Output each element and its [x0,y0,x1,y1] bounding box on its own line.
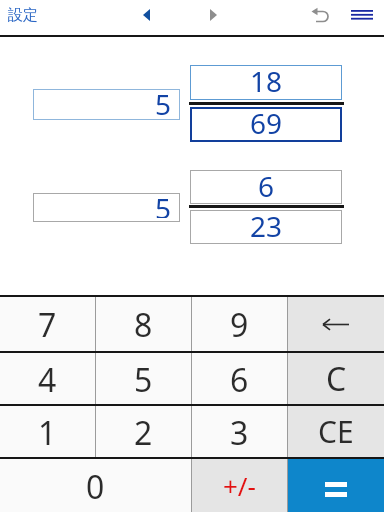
button[interactable]: 4 [0,353,95,404]
staticText: 2 [134,411,153,455]
button[interactable] [195,0,231,29]
staticText: 7 [38,303,57,347]
staticText: C [326,357,347,401]
button[interactable] [288,297,384,351]
button[interactable]: 2 [96,406,191,457]
staticText: 6 [230,358,249,402]
staticText: 9 [230,303,249,347]
staticText: 0 [86,465,105,509]
button[interactable]: 3 [192,406,287,457]
staticText: 設定 [8,6,38,25]
button[interactable]: CE [288,406,384,457]
button[interactable]: +/- [192,459,287,512]
staticText: 3 [230,411,249,455]
staticText: 6 [258,167,275,201]
button[interactable]: 6 [190,170,342,204]
button[interactable]: 18 [190,65,342,100]
staticText: 18 [250,62,283,97]
staticText: CE [318,411,354,452]
button[interactable]: 5 [33,89,172,120]
button[interactable]: 0 [0,459,191,512]
staticText: 5 [155,189,172,218]
button[interactable]: 69 [190,107,342,142]
button[interactable]: 6 [192,353,287,404]
button[interactable]: 5 [33,193,172,222]
button[interactable] [344,0,380,29]
staticText: 5 [134,358,153,402]
staticText: 5 [155,85,172,116]
staticText: +/- [223,468,256,503]
button[interactable]: 5 [96,353,191,404]
staticText: 69 [250,104,283,139]
button[interactable]: C [288,353,384,404]
staticText: 4 [38,358,57,402]
staticText: 8 [134,303,153,347]
button[interactable]: 23 [190,210,342,244]
button[interactable]: 8 [96,297,191,351]
staticText: 1 [38,411,57,455]
button[interactable] [302,0,338,29]
button[interactable] [128,0,164,29]
button[interactable]: 9 [192,297,287,351]
button[interactable]: 1 [0,406,95,457]
button[interactable] [288,459,384,512]
button[interactable]: 設定 [8,0,38,30]
button[interactable]: 7 [0,297,95,351]
staticText: 23 [250,207,283,241]
